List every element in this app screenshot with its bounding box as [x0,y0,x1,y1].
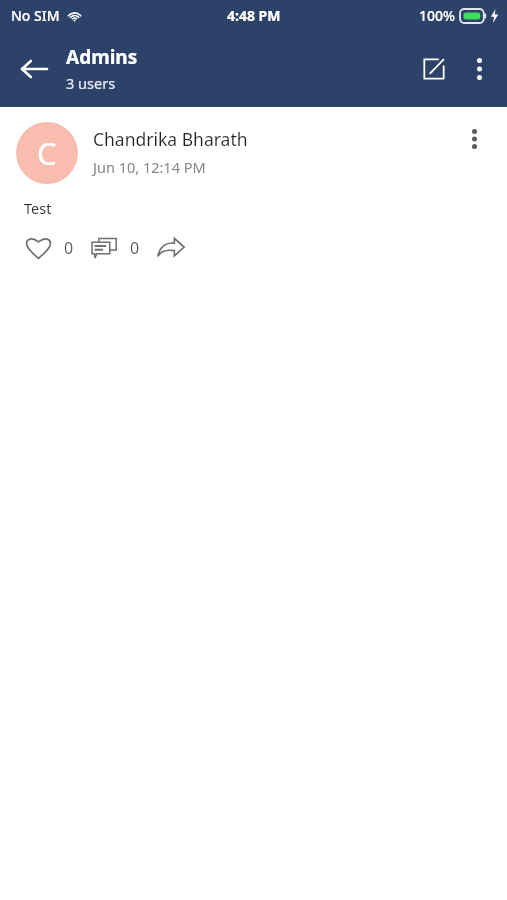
staticText: C [37,132,57,174]
staticText: 100% [419,6,455,25]
staticText: 0 [130,237,140,259]
button[interactable]: Comment [87,231,121,265]
staticText: 0 [64,237,74,259]
staticText: 3 users [66,73,116,93]
button[interactable]: C [8,112,499,278]
staticText: No SIM [11,6,60,25]
button[interactable]: Like [21,231,55,265]
button[interactable]: Share [153,230,189,266]
button[interactable]: Compose [411,46,457,92]
staticText: Admins [66,44,138,70]
staticText: Jun 10, 12:14 PM [93,157,206,177]
button[interactable]: Post options [457,122,491,156]
staticText: Chandrika Bharath [93,127,248,151]
staticText: Test [24,198,52,218]
button[interactable]: More options [457,47,501,91]
staticText: 4:48 PM [227,6,281,25]
button[interactable]: Back [10,45,58,93]
